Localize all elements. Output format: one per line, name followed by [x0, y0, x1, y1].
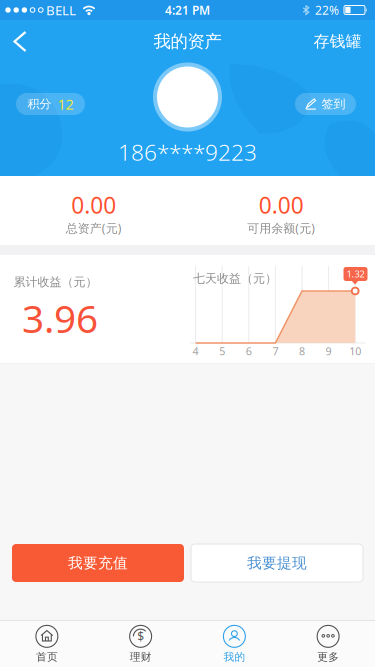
staticText: 首页 — [36, 650, 58, 663]
button[interactable]: 首页 — [0, 624, 94, 663]
staticText: 5 — [219, 344, 225, 358]
staticText: 6 — [246, 344, 252, 358]
staticText: 0.00 — [259, 190, 304, 220]
button[interactable]: $ — [94, 624, 188, 663]
staticText: 0.00 — [71, 190, 116, 220]
staticText: 我要充值 — [68, 554, 128, 572]
staticText: 签到 — [321, 97, 345, 111]
button[interactable]: 积分 — [0, 64, 85, 115]
staticText: 累计收益（元） — [13, 275, 97, 289]
staticText: 186****9223 — [118, 137, 257, 167]
staticText: 我的 — [223, 650, 245, 663]
staticText: 1.32 — [346, 268, 364, 280]
button[interactable]: 返回 — [0, 20, 35, 57]
button[interactable]: 我要充值 — [12, 544, 184, 582]
staticText: 七天收益（元） — [193, 271, 277, 286]
button[interactable]: 更多 — [281, 624, 375, 663]
staticText: 存钱罐 — [313, 32, 361, 51]
staticText: 12 — [57, 94, 73, 114]
button[interactable]: 我的 — [187, 624, 281, 663]
staticText: 3.96 — [22, 292, 98, 344]
staticText: 9 — [326, 344, 332, 358]
button[interactable]: 存钱罐 — [0, 20, 368, 54]
staticText: 更多 — [317, 650, 339, 663]
button[interactable]: 签到 — [0, 64, 356, 115]
staticText: BELL — [46, 1, 76, 19]
staticText: 理财 — [130, 650, 152, 663]
staticText: 积分 — [27, 97, 51, 111]
staticText: 我要提现 — [247, 554, 307, 572]
staticText: 7 — [272, 344, 278, 358]
button[interactable]: 我要提现 — [191, 544, 363, 582]
staticText: 8 — [299, 344, 305, 358]
staticText: $ — [137, 628, 144, 644]
staticText: 可用余额(元) — [247, 220, 315, 236]
staticText: 4 — [193, 344, 199, 358]
staticText: 10 — [349, 344, 361, 358]
staticText: 总资产(元) — [66, 220, 122, 236]
staticText: 4:21 PM — [165, 2, 210, 18]
staticText: 我的资产 — [153, 31, 221, 52]
staticText: 22% — [315, 2, 339, 18]
